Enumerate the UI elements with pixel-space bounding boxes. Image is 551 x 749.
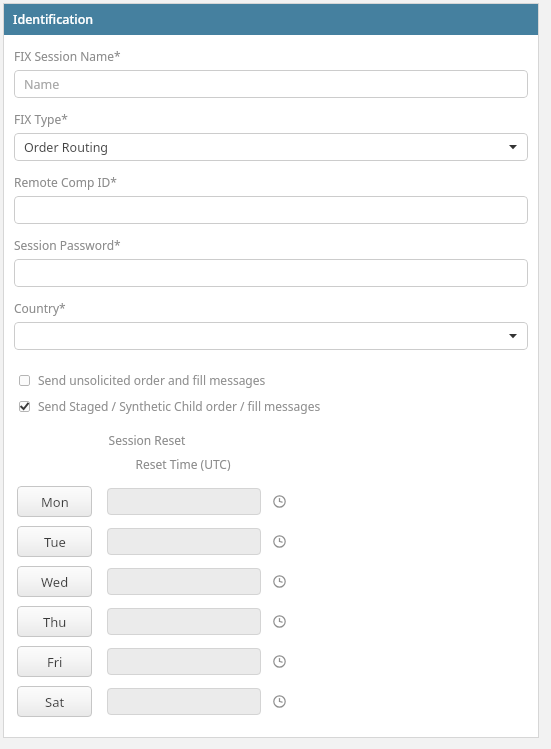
staticText: Sat — [45, 693, 65, 711]
staticText: Wed — [41, 573, 69, 591]
button[interactable] — [107, 608, 261, 635]
staticText: Send unsolicited order and fill messages — [38, 372, 266, 388]
button[interactable]: Wed — [17, 566, 92, 597]
button[interactable]: Pick reset time — [269, 651, 289, 671]
button[interactable] — [107, 688, 261, 715]
staticText: Thu — [43, 613, 67, 631]
button[interactable] — [107, 648, 261, 675]
button[interactable] — [107, 528, 261, 555]
button[interactable]: Send Staged / Synthetic Child order / fi… — [19, 395, 528, 417]
staticText: Name — [24, 76, 60, 93]
staticText: Session Reset — [47, 432, 247, 448]
button[interactable]: Tue — [17, 526, 92, 557]
button[interactable] — [14, 196, 528, 224]
button[interactable]: Pick reset time — [269, 531, 289, 551]
button[interactable]: Order Routing — [14, 133, 528, 161]
button[interactable]: Pick reset time — [269, 691, 289, 711]
staticText: Fri — [47, 653, 63, 671]
staticText: Tue — [44, 533, 66, 551]
button[interactable]: Pick reset time — [269, 491, 289, 511]
button[interactable] — [107, 568, 261, 595]
button[interactable] — [14, 322, 528, 350]
button[interactable] — [14, 259, 528, 287]
staticText: Reset Time (UTC) — [83, 456, 283, 472]
button[interactable]: Name — [14, 70, 528, 98]
staticText: Send Staged / Synthetic Child order / fi… — [38, 398, 321, 414]
button[interactable]: Fri — [17, 646, 92, 677]
staticText: FIX Type* — [14, 111, 68, 127]
button[interactable]: Pick reset time — [269, 611, 289, 631]
staticText: Identification — [13, 11, 94, 28]
button[interactable]: Mon — [17, 486, 92, 517]
button[interactable] — [107, 488, 261, 515]
button[interactable]: Sat — [17, 686, 92, 717]
staticText: Country* — [14, 300, 66, 316]
button[interactable]: Send unsolicited order and fill messages — [19, 369, 528, 391]
button[interactable]: Thu — [17, 606, 92, 637]
button[interactable]: Pick reset time — [269, 571, 289, 591]
staticText: Session Password* — [14, 237, 121, 253]
button[interactable]: Identification — [3, 3, 539, 35]
staticText: Remote Comp ID* — [14, 174, 117, 190]
staticText: FIX Session Name* — [14, 48, 121, 64]
staticText: Mon — [41, 493, 69, 511]
staticText: Order Routing — [24, 139, 109, 156]
